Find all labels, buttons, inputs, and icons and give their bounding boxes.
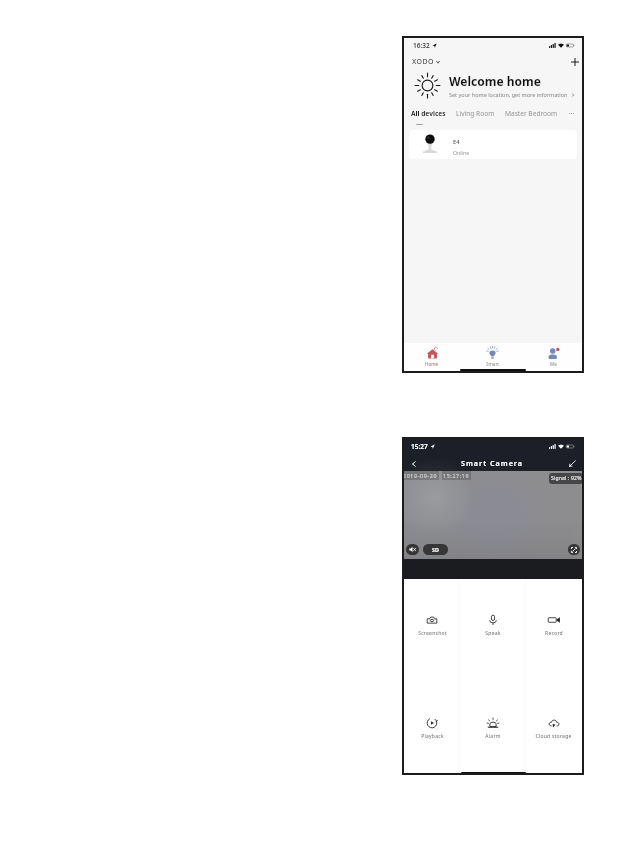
staticText: Me [550,361,557,367]
button[interactable]: Smart [462,345,523,369]
staticText: XODO [412,57,434,66]
button[interactable]: Back [407,457,420,470]
staticText: Welcome home [449,73,541,89]
staticText: Smart [486,361,499,367]
button[interactable]: Record [523,614,584,638]
staticText: 2019-09-20 [403,472,438,479]
button[interactable]: E4 [409,130,577,159]
staticText: Alarm [485,733,501,740]
button[interactable]: Master Bedroom [505,109,558,118]
staticText: E4 [453,138,460,146]
staticText: Screenshot [418,630,447,637]
staticText: Playback [421,733,444,740]
staticText: 15:27:19 [443,472,470,479]
staticText: 16:32 [413,41,430,50]
button[interactable]: Mute [406,544,419,555]
button[interactable]: All devices [411,109,446,118]
button[interactable]: Fullscreen [568,544,580,555]
staticText: SD [432,546,439,553]
staticText: Home [425,361,439,367]
button[interactable]: Signal : 92% [549,473,583,484]
staticText: Cloud storage [535,733,572,740]
staticText: Signal : 92% [551,475,582,482]
button[interactable]: Home [402,345,462,369]
button[interactable]: Screenshot [402,614,462,638]
button[interactable]: Speak [462,614,523,638]
staticText: 15:27 [411,442,428,451]
staticText: Online [453,149,470,156]
button[interactable]: Living Room [456,109,495,118]
button[interactable]: More tabs [565,107,577,119]
button[interactable]: Me [523,345,584,369]
staticText: Record [545,630,563,637]
button[interactable]: Cloud storage [523,717,584,741]
button[interactable]: XODO [410,55,442,68]
button[interactable]: Edit [566,457,579,470]
button[interactable]: SD [423,544,448,555]
staticText: Smart Camera [461,458,524,468]
button[interactable]: Alarm [462,717,523,741]
staticText: Speak [485,630,501,637]
staticText: Set your home location, get more informa… [449,91,568,98]
button[interactable]: Playback [402,717,462,741]
button[interactable]: Add device [568,55,581,68]
